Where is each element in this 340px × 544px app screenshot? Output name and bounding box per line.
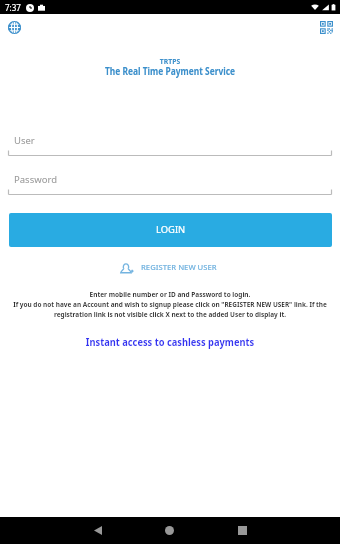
button[interactable]: LOGIN xyxy=(9,213,332,247)
button[interactable]: Back xyxy=(60,517,135,544)
button[interactable]: Scan QR code xyxy=(316,17,337,38)
staticText: The Real Time Payment Service xyxy=(24,65,316,78)
staticText: LOGIN xyxy=(156,223,186,236)
staticText: REGISTER NEW USER xyxy=(141,262,217,272)
staticText: TRTPS xyxy=(0,57,340,66)
button[interactable]: Home xyxy=(132,517,207,544)
staticText: Enter mobile number or ID and Password t… xyxy=(10,290,330,299)
staticText: Password xyxy=(14,173,57,186)
button[interactable]: Language xyxy=(4,17,25,38)
staticText: If you do not have an Account and wish t… xyxy=(9,300,331,319)
staticText: User xyxy=(14,134,35,147)
staticText: 7:37 xyxy=(5,2,21,13)
button[interactable]: Recent apps xyxy=(205,517,280,544)
staticText: Instant access to cashless payments xyxy=(20,335,320,349)
button[interactable]: REGISTER NEW USER xyxy=(0,257,338,277)
